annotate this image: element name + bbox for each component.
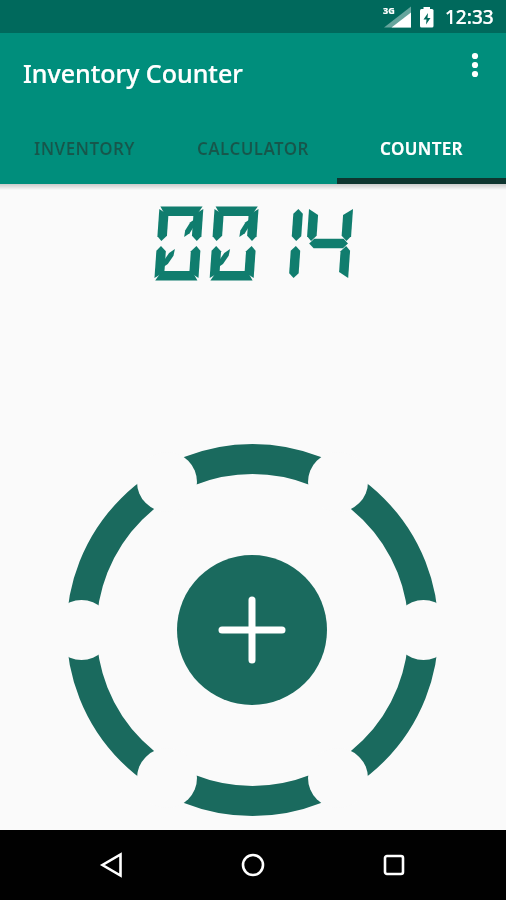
- button[interactable]: [323, 830, 465, 900]
- button[interactable]: [41, 830, 183, 900]
- button[interactable]: INVENTORY: [0, 113, 168, 184]
- staticText: INVENTORY: [34, 137, 135, 160]
- button[interactable]: [177, 555, 327, 705]
- staticText: CALCULATOR: [197, 137, 309, 160]
- staticText: Inventory Counter: [23, 56, 243, 90]
- button[interactable]: [183, 830, 323, 900]
- staticText: 3G: [383, 4, 395, 16]
- staticText: 12:33: [445, 4, 494, 30]
- staticText: COUNTER: [380, 137, 463, 160]
- button[interactable]: [451, 49, 499, 97]
- button[interactable]: COUNTER: [337, 113, 506, 184]
- button[interactable]: CALCULATOR: [168, 113, 337, 184]
